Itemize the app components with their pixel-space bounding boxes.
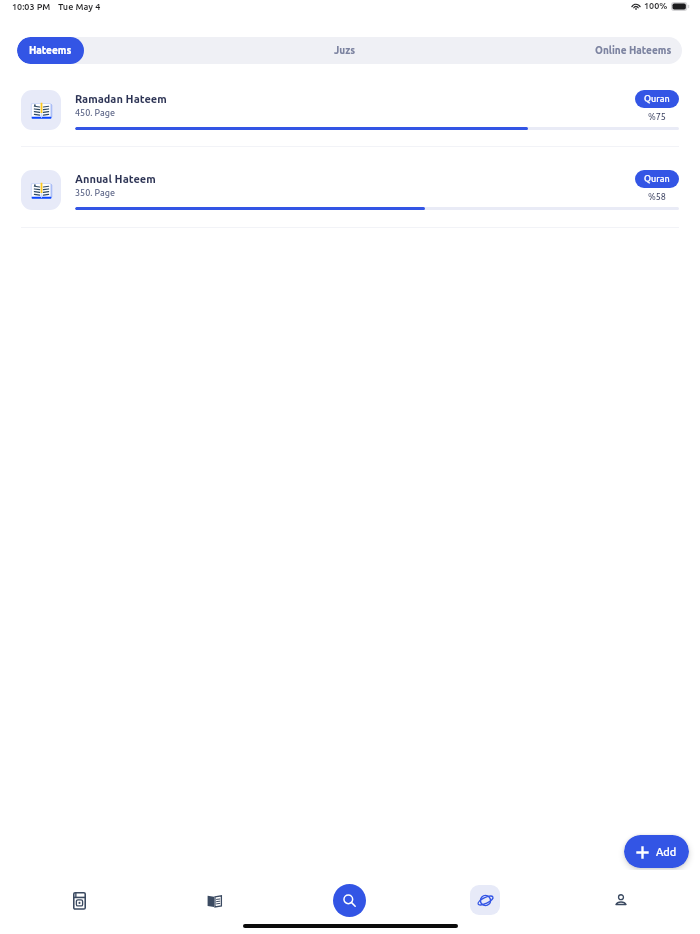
- button[interactable]: Ramadan Hateem: [0, 90, 700, 130]
- button[interactable]: Add: [624, 835, 689, 868]
- staticText: 10:03 PM: [12, 2, 51, 12]
- staticText: Tue May 4: [58, 2, 101, 12]
- button[interactable]: Profile: [606, 885, 636, 915]
- staticText: Hateems: [29, 45, 72, 56]
- staticText: Quran: [644, 94, 670, 104]
- button[interactable]: Read: [199, 885, 229, 915]
- staticText: Quran: [644, 174, 670, 184]
- staticText: Online Hateems: [595, 45, 672, 56]
- button[interactable]: Search: [333, 884, 366, 917]
- button[interactable]: Hateems: [17, 37, 84, 64]
- staticText: Annual Hateem: [75, 173, 156, 185]
- button[interactable]: Explore: [470, 885, 500, 915]
- button[interactable]: Quran: [635, 170, 679, 188]
- staticText: %75: [648, 112, 666, 122]
- button[interactable]: Quran: [64, 885, 94, 915]
- staticText: 450. Page: [75, 108, 115, 118]
- button[interactable]: Juzs: [279, 37, 411, 64]
- staticText: 350. Page: [75, 188, 115, 198]
- staticText: Ramadan Hateem: [75, 93, 167, 105]
- staticText: Juzs: [334, 45, 356, 56]
- button[interactable]: Quran: [635, 90, 679, 108]
- staticText: 100%: [644, 1, 668, 11]
- button[interactable]: Annual Hateem: [0, 170, 700, 210]
- staticText: %58: [648, 192, 666, 202]
- staticText: Add: [656, 846, 677, 858]
- button[interactable]: Online Hateems: [567, 37, 682, 64]
